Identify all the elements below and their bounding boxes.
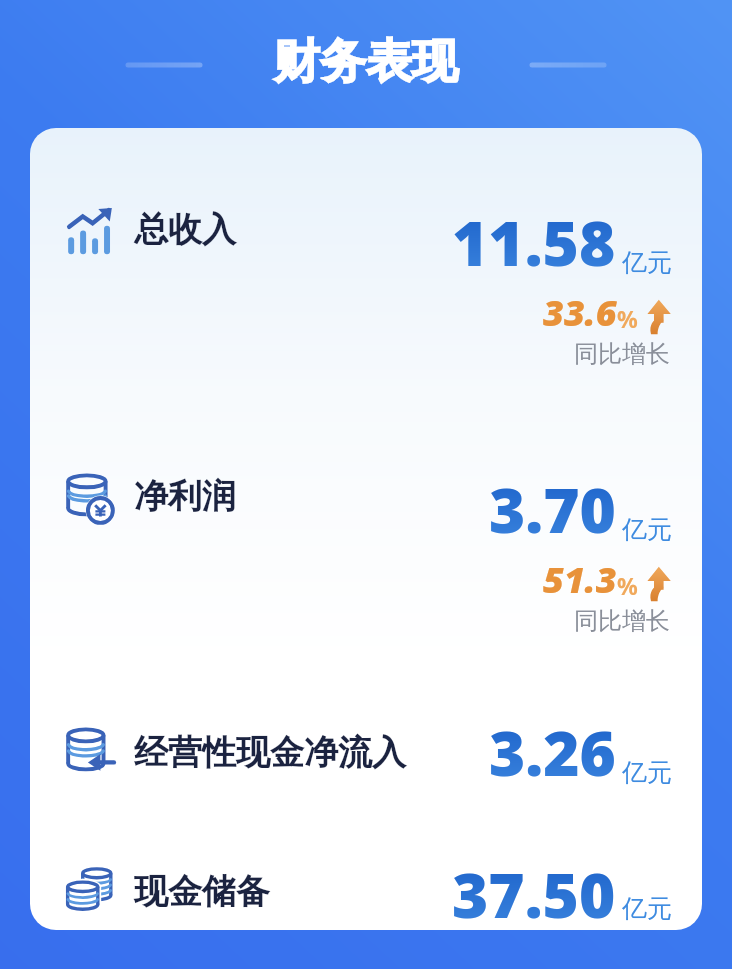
staticText: 同比增长: [574, 339, 670, 369]
other: Total revenue: [64, 206, 116, 258]
staticText: 33.6: [543, 288, 617, 337]
staticText: 亿元: [622, 893, 672, 924]
button[interactable]: Operating cash inflow: [30, 710, 702, 794]
staticText: 亿元: [622, 247, 672, 278]
staticText: %: [617, 303, 638, 334]
other: Growth up: [642, 566, 672, 602]
staticText: 51.3: [543, 555, 617, 604]
staticText: 亿元: [622, 514, 672, 545]
other: Net profit: [64, 473, 116, 525]
staticText: 经营性现金净流入: [134, 731, 406, 774]
staticText: 亿元: [622, 757, 672, 788]
button[interactable]: Net profit: [30, 467, 702, 636]
staticText: 11.58: [452, 200, 616, 284]
staticText: %: [617, 570, 638, 601]
other: Cash reserves: [64, 865, 116, 917]
staticText: 财务表现: [274, 33, 458, 91]
staticText: 同比增长: [574, 606, 670, 636]
staticText: 净利润: [134, 475, 236, 518]
button[interactable]: Cash reserves: [30, 852, 702, 930]
staticText: 3.26: [489, 710, 616, 794]
other: Operating cash inflow: [64, 726, 116, 778]
staticText: 37.50: [452, 852, 616, 930]
staticText: 现金储备: [134, 870, 270, 913]
button[interactable]: Total revenue: [30, 200, 702, 369]
staticText: 总收入: [134, 208, 236, 251]
staticText: 3.70: [489, 467, 616, 551]
other: Growth up: [642, 299, 672, 335]
